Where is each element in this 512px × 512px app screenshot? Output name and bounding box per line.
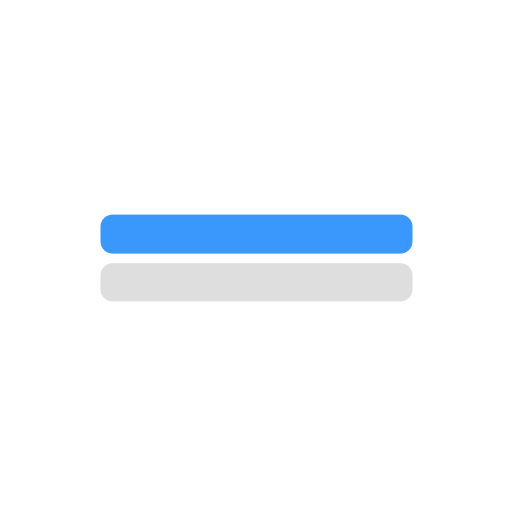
- button[interactable]: Secondary action: [100, 263, 412, 301]
- button[interactable]: Primary action: [100, 215, 412, 254]
